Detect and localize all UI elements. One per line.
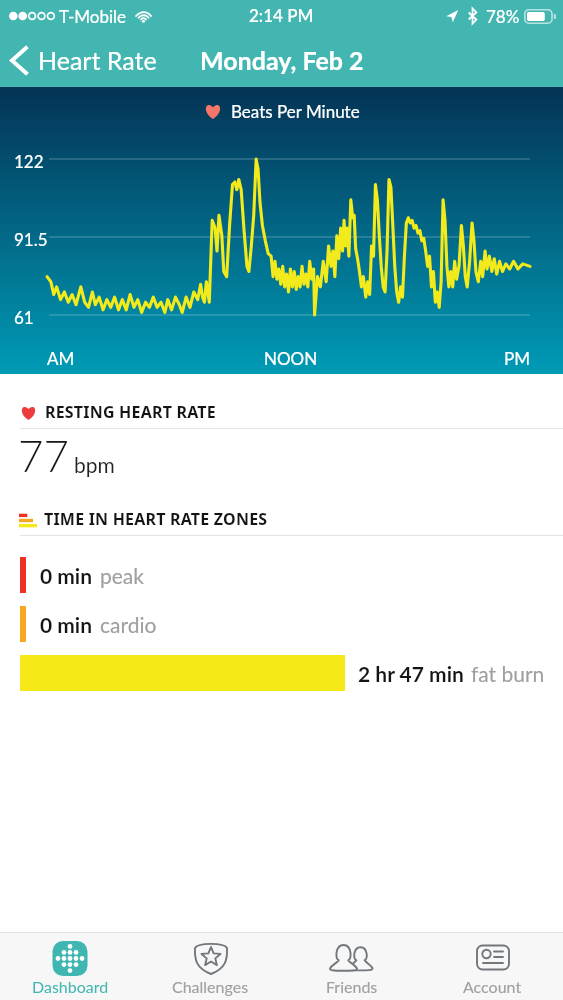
staticText: 61 (14, 307, 34, 327)
staticText: 77 (18, 429, 70, 482)
button[interactable]: Heart Rate (0, 39, 167, 81)
staticText: T-Mobile (59, 6, 127, 26)
staticText: fat burn (471, 661, 545, 686)
staticText: Monday, Feb 2 (200, 45, 364, 75)
staticText: cardio (100, 612, 157, 637)
staticText: 91.5 (14, 229, 48, 249)
staticText: Challenges (172, 977, 249, 996)
staticText: Friends (326, 977, 378, 996)
staticText: 78% (486, 6, 520, 26)
staticText: bpm (74, 452, 115, 477)
staticText: 0 min (40, 612, 93, 637)
staticText: peak (100, 563, 144, 588)
staticText: 2:14 PM (249, 5, 314, 25)
staticText: NOON (264, 348, 318, 368)
staticText: RESTING HEART RATE (45, 401, 216, 423)
staticText: 2 hr 47 min (358, 661, 464, 686)
staticText: Account (463, 977, 522, 996)
staticText: Heart Rate (38, 45, 157, 75)
staticText: Beats Per Minute (231, 101, 360, 121)
button[interactable]: Account (422, 933, 563, 1000)
button[interactable]: Dashboard (0, 933, 140, 1000)
staticText: AM (47, 348, 75, 368)
button[interactable]: Friends (281, 933, 422, 1000)
staticText: PM (504, 348, 530, 368)
staticText: TIME IN HEART RATE ZONES (44, 508, 268, 530)
staticText: Dashboard (32, 977, 109, 996)
staticText: 122 (14, 151, 44, 171)
staticText: 0 min (40, 563, 93, 588)
button[interactable]: Challenges (140, 933, 281, 1000)
